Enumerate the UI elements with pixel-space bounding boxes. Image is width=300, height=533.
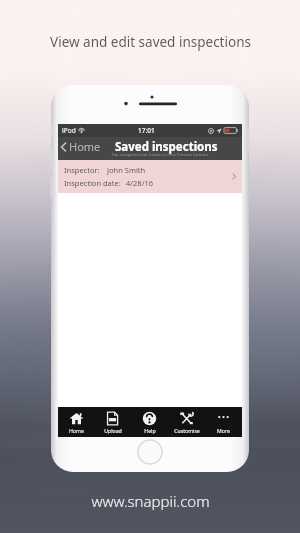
staticText: John Smith <box>107 165 146 175</box>
staticText: Home <box>69 427 84 434</box>
staticText: 4/28/16 <box>126 178 154 188</box>
button[interactable]: More <box>205 407 242 437</box>
staticText: Tap navigation bar below to view Preview… <box>111 152 209 158</box>
staticText: Help <box>144 427 156 434</box>
staticText: www.snappii.com <box>91 491 210 511</box>
staticText: Inspector: <box>64 165 100 175</box>
button[interactable]: Customise <box>168 407 205 437</box>
staticText: 17:01 <box>138 126 155 135</box>
staticText: Upload <box>104 427 122 434</box>
button[interactable]: Inspector: <box>58 160 242 193</box>
staticText: Home <box>69 139 101 154</box>
staticText: View and edit saved inspections <box>50 33 251 51</box>
button[interactable]: Upload <box>94 407 131 437</box>
staticText: Customise <box>174 427 200 434</box>
other: Open inspection <box>232 173 236 180</box>
staticText: More <box>217 427 230 434</box>
button[interactable]: Home button <box>137 439 163 465</box>
button[interactable]: Help <box>131 407 168 437</box>
staticText: Inspection date: <box>64 178 121 188</box>
button[interactable]: Home <box>61 139 101 154</box>
button[interactable]: Home <box>58 407 94 437</box>
staticText: iPod <box>62 126 76 135</box>
staticText: Saved inspections <box>115 139 218 155</box>
